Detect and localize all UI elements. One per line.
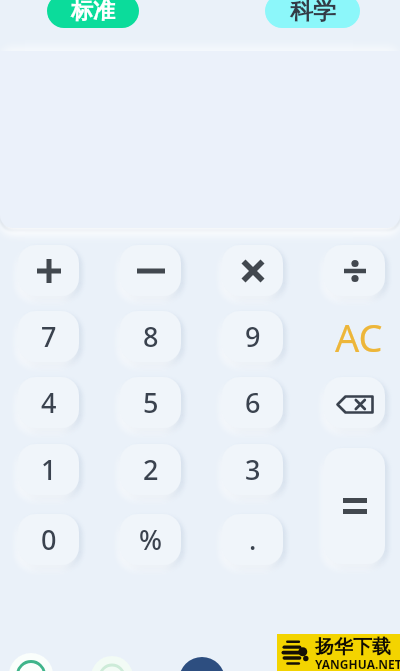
staticText: 9 (245, 318, 261, 355)
button[interactable]: 标准 (47, 0, 139, 28)
button[interactable]: 4 (18, 377, 79, 428)
staticText: AC (335, 311, 383, 362)
button[interactable]: 科学 (265, 0, 360, 28)
button[interactable]: 0 (18, 514, 79, 565)
staticText: 2 (143, 451, 159, 488)
button[interactable]: 1 (18, 444, 79, 495)
button[interactable]: 8 (120, 311, 181, 362)
button[interactable]: AC (328, 311, 389, 362)
button[interactable]: Plus (18, 245, 79, 296)
button[interactable]: 6 (222, 377, 283, 428)
button[interactable]: 9 (222, 311, 283, 362)
button[interactable]: Equals (324, 448, 385, 564)
button[interactable]: Backspace (324, 377, 385, 428)
staticText: . (249, 521, 257, 558)
staticText: 3 (245, 451, 261, 488)
staticText: 4 (41, 384, 57, 421)
button[interactable]: Divide (324, 245, 385, 296)
button[interactable]: 2 (120, 444, 181, 495)
staticText: 6 (245, 384, 261, 421)
button[interactable]: Minus (120, 245, 181, 296)
button[interactable]: App dock (0, 0, 400, 671)
staticText: 0 (41, 521, 57, 558)
button[interactable]: Multiply (222, 245, 283, 296)
staticText: % (139, 521, 163, 558)
staticText: 科学 (290, 0, 336, 26)
button[interactable]: 3 (222, 444, 283, 495)
staticText: YANGHUA.NET (315, 656, 400, 671)
button[interactable]: % (120, 514, 181, 565)
button[interactable]: 7 (18, 311, 79, 362)
button[interactable]: . (222, 514, 283, 565)
staticText: 标准 (71, 0, 115, 25)
staticText: 7 (41, 318, 57, 355)
staticText: 1 (41, 451, 57, 488)
staticText: 5 (143, 384, 159, 421)
button[interactable]: 5 (120, 377, 181, 428)
staticText: 8 (143, 318, 159, 355)
staticText: 扬华下载 (315, 635, 391, 659)
